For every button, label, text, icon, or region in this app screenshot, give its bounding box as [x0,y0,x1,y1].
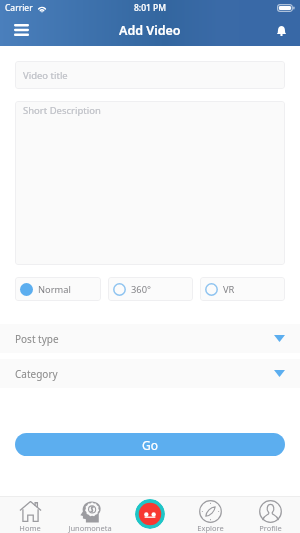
staticText: Normal [38,283,71,296]
staticText: 360° [131,283,151,296]
staticText: Video title [23,69,68,82]
staticText: Go [142,437,158,453]
staticText: Home [19,523,41,533]
button[interactable]: Notifications [273,22,289,38]
staticText: Short Description [23,104,101,117]
staticText: Profile [259,523,282,533]
button[interactable]: Explore [180,496,240,533]
button[interactable]: Profile [240,496,300,533]
staticText: 8:01 PM [134,2,167,14]
button[interactable]: Go [15,433,285,456]
staticText: Junomoneta [68,523,112,533]
button[interactable]: Junomoneta [60,496,120,533]
button[interactable]: VR [200,277,285,301]
button[interactable]: Home [0,496,60,533]
staticText: Explore [197,523,224,533]
staticText: Category [15,367,58,381]
button[interactable]: 360° [108,277,193,301]
staticText: VR [223,283,235,296]
button[interactable]: Category [0,359,300,388]
button[interactable]: Open navigation menu [10,19,32,41]
button[interactable]: Normal [15,277,101,301]
staticText: Add Video [119,22,181,39]
button[interactable]: Record video [135,499,165,529]
staticText: Carrier [5,2,33,14]
button[interactable]: Post type [0,324,300,353]
staticText: Post type [15,332,59,346]
